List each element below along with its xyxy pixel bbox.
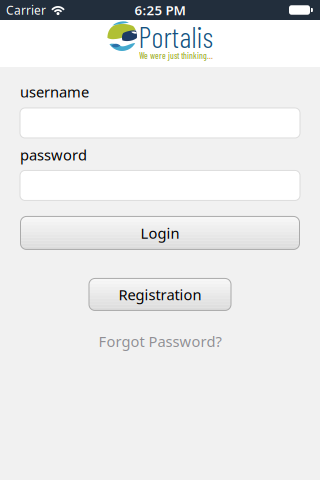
- staticText: Login: [140, 223, 179, 243]
- staticText: Carrier: [6, 2, 46, 18]
- staticText: 6:25 PM: [134, 1, 185, 19]
- staticText: Forgot Password?: [98, 331, 221, 351]
- staticText: We were just thinking: [139, 50, 207, 61]
- button[interactable]: Forgot Password?: [98, 331, 221, 351]
- button[interactable]: password: [0, 170, 320, 200]
- button[interactable]: Login: [20, 216, 299, 249]
- button[interactable]: username: [0, 108, 320, 138]
- staticText: password: [20, 145, 87, 164]
- staticText: username: [20, 82, 89, 101]
- staticText: Registration: [118, 285, 201, 304]
- staticText: Portalis: [138, 19, 213, 54]
- button[interactable]: Registration: [89, 278, 231, 310]
- staticText: ...: [207, 50, 213, 61]
